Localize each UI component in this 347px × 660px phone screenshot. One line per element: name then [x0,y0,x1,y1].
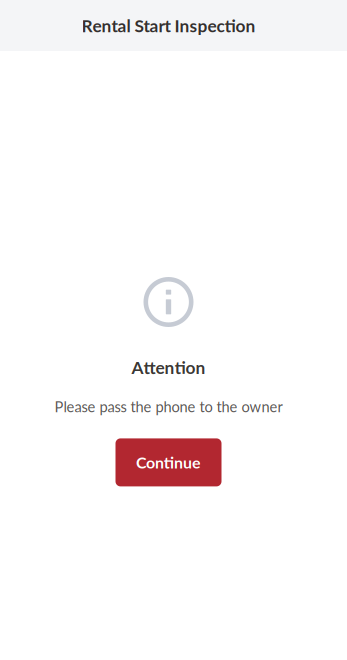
staticText: Continue [136,453,201,472]
staticText: Please pass the phone to the owner [54,398,282,415]
staticText: Attention [131,357,205,378]
staticText: Rental Start Inspection [81,15,255,36]
button[interactable]: Continue [115,438,221,486]
